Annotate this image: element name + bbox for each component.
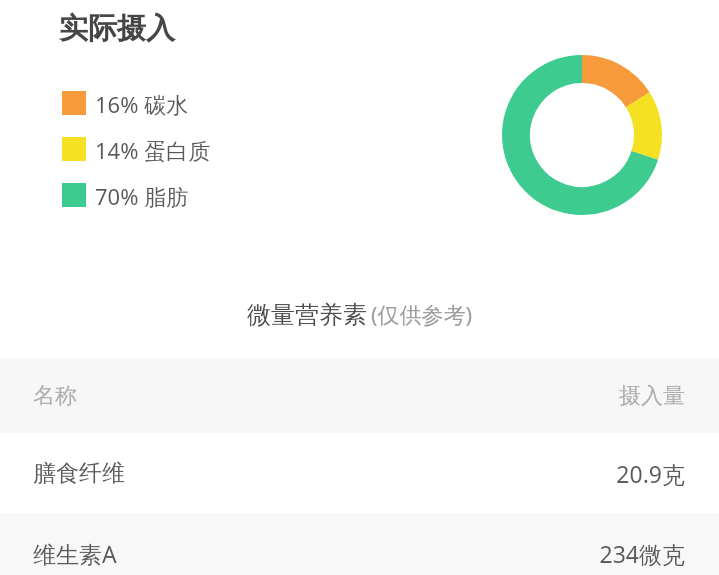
staticText: 名称: [33, 382, 77, 410]
staticText: 维生素A: [33, 538, 117, 569]
staticText: 20.9克: [616, 458, 685, 489]
staticText: 16% 碳水: [95, 89, 189, 117]
staticText: 70% 脂肪: [95, 181, 189, 209]
staticText: 摄入量: [619, 382, 685, 410]
button[interactable]: 营养素占比圆环图: [502, 55, 662, 215]
staticText: 膳食纤维: [33, 459, 125, 488]
button[interactable]: 膳食纤维: [0, 433, 719, 513]
button[interactable]: 16% 碳水: [62, 89, 189, 117]
button[interactable]: 70% 脂肪: [62, 181, 189, 209]
button[interactable]: 名称: [0, 358, 719, 433]
button[interactable]: 14% 蛋白质: [62, 135, 211, 163]
staticText: 实际摄入: [59, 10, 175, 47]
button[interactable]: 维生素A: [0, 513, 719, 575]
staticText: 14% 蛋白质: [95, 135, 211, 163]
staticText: (仅供参考): [371, 299, 473, 329]
staticText: 微量营养素: [247, 300, 367, 330]
staticText: 234微克: [599, 538, 685, 569]
